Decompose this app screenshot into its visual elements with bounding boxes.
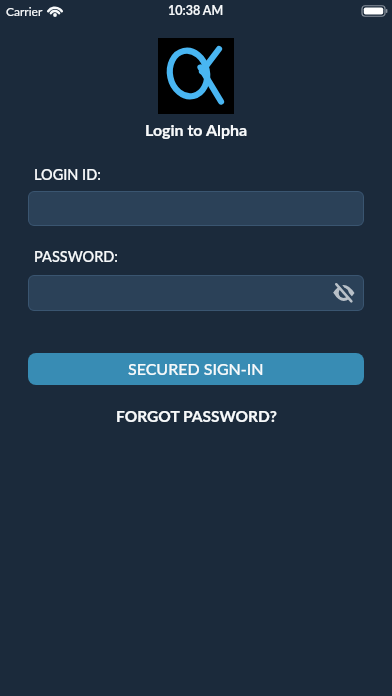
staticText: Login to Alpha bbox=[145, 120, 248, 139]
staticText: LOGIN ID: bbox=[34, 166, 101, 183]
staticText: 10:38 AM bbox=[168, 3, 224, 18]
button[interactable]: FORGOT PASSWORD? bbox=[116, 407, 277, 426]
button[interactable]: SECURED SIGN-IN bbox=[28, 353, 364, 385]
staticText: PASSWORD: bbox=[34, 248, 119, 265]
staticText: Carrier bbox=[6, 4, 43, 18]
staticText: SECURED SIGN-IN bbox=[128, 359, 264, 378]
button[interactable] bbox=[332, 281, 356, 305]
button[interactable] bbox=[28, 191, 364, 226]
button[interactable] bbox=[28, 275, 364, 311]
